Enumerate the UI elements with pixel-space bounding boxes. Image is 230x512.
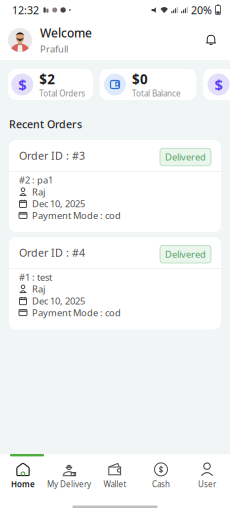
staticText: Delivered — [165, 151, 206, 163]
button[interactable]: Notifications — [200, 29, 222, 51]
staticText: Raj — [32, 186, 45, 198]
staticText: Total Orders — [39, 88, 85, 99]
staticText: Payment Mode : cod — [32, 209, 121, 222]
button[interactable]: Cash — [138, 456, 184, 494]
staticText: User — [198, 479, 216, 489]
staticText: Wallet — [103, 479, 126, 489]
staticText: Home — [11, 479, 35, 489]
button[interactable]: My Delivery — [46, 456, 92, 494]
staticText: #2 : pa1 — [19, 174, 53, 186]
staticText: $ — [18, 75, 26, 94]
staticText: Cash — [152, 479, 170, 489]
staticText: Order ID : #4 — [19, 246, 85, 260]
staticText: $ — [214, 75, 222, 94]
button[interactable]: Order ID : #4 — [9, 237, 221, 329]
button[interactable]: $0 — [99, 69, 196, 100]
staticText: My Delivery — [47, 479, 91, 489]
staticText: Delivered — [165, 248, 206, 260]
staticText: 12:32 — [12, 3, 39, 17]
staticText: Order ID : #3 — [19, 148, 85, 163]
staticText: Dec 10, 2025 — [32, 197, 85, 210]
staticText: $2 — [39, 70, 55, 88]
button[interactable]: Order ID : #3 — [9, 140, 221, 232]
button[interactable]: Home — [0, 456, 46, 494]
staticText: Prafull — [40, 43, 68, 55]
staticText: Total Balance — [132, 88, 181, 99]
staticText: Welcome — [40, 25, 92, 41]
button[interactable]: User — [184, 456, 230, 494]
staticText: #1 : test — [19, 271, 52, 283]
staticText: Dec 10, 2025 — [32, 295, 85, 307]
button[interactable]: $ — [8, 69, 93, 100]
staticText: Raj — [32, 283, 45, 295]
staticText: Recent Orders — [9, 117, 82, 131]
staticText: $0 — [132, 70, 148, 88]
button[interactable]: Wallet — [92, 456, 138, 494]
button[interactable]: $ — [203, 69, 230, 100]
staticText: 20% — [191, 3, 212, 17]
staticText: Payment Mode : cod — [32, 306, 121, 319]
